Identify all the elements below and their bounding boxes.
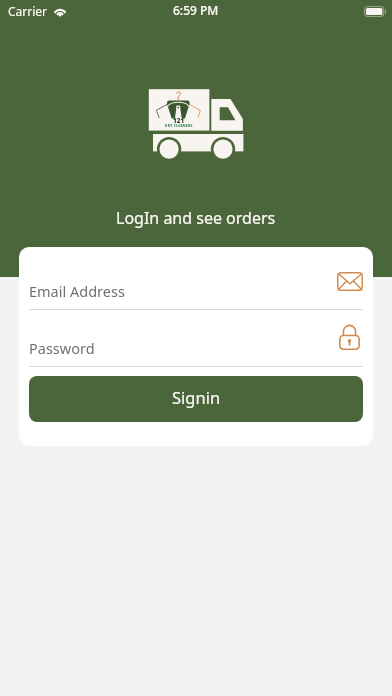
- button[interactable]: Signin: [29, 376, 363, 422]
- staticText: Signin: [172, 386, 221, 408]
- button[interactable]: Email Address: [29, 266, 363, 309]
- other: Battery: [364, 6, 386, 17]
- staticText: DRY CLEANERS: [165, 123, 193, 128]
- staticText: Email Address: [29, 281, 125, 301]
- other: Password: [339, 325, 360, 350]
- staticText: 6:59 PM: [173, 2, 219, 18]
- button[interactable]: Password: [29, 323, 363, 366]
- staticText: Carrier: [8, 3, 48, 19]
- staticText: 121: [173, 116, 185, 124]
- staticText: LogIn and see orders: [116, 207, 276, 229]
- staticText: Password: [29, 338, 95, 358]
- other: Email: [337, 272, 363, 291]
